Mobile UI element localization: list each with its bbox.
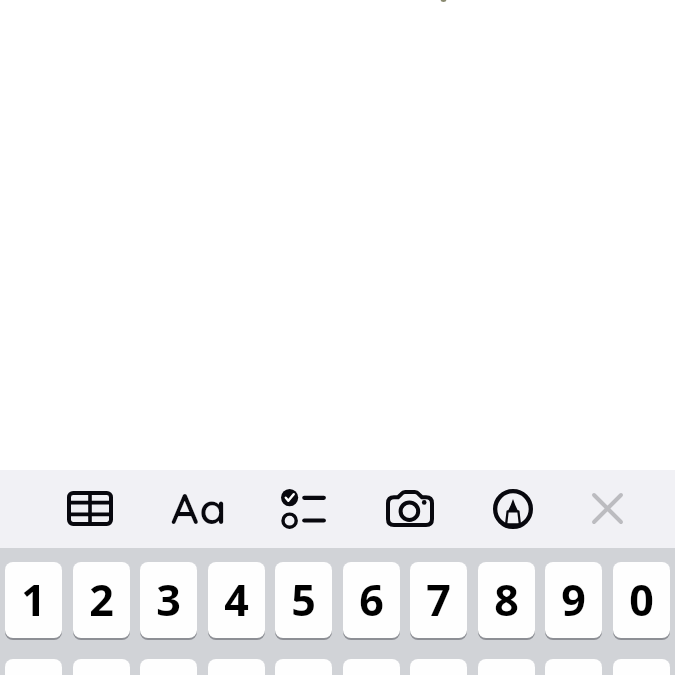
button[interactable] <box>478 659 535 675</box>
button[interactable] <box>275 659 332 675</box>
staticText: 9 <box>561 570 586 629</box>
staticText: Aa <box>171 481 227 535</box>
button[interactable] <box>613 659 670 675</box>
staticText: 1 <box>21 570 46 629</box>
staticText: 4 <box>224 570 249 629</box>
button[interactable]: 0 <box>613 562 670 638</box>
staticText: 6 <box>359 570 384 629</box>
button[interactable] <box>140 659 197 675</box>
button[interactable] <box>208 659 265 675</box>
button[interactable]: Aa <box>166 475 231 541</box>
button[interactable]: 1 <box>5 562 62 638</box>
staticText: 5 <box>291 570 316 629</box>
staticText: 8 <box>494 570 519 629</box>
staticText: 7 <box>426 570 451 629</box>
button[interactable]: 8 <box>478 562 535 638</box>
button[interactable]: 4 <box>208 562 265 638</box>
button[interactable]: Insert table <box>58 475 122 541</box>
staticText: 0 <box>629 570 654 629</box>
button[interactable]: 9 <box>545 562 602 638</box>
button[interactable] <box>5 659 62 675</box>
staticText: 3 <box>156 570 181 629</box>
button[interactable]: 2 <box>73 562 130 638</box>
button[interactable]: 5 <box>275 562 332 638</box>
button[interactable] <box>343 659 400 675</box>
button[interactable]: Camera <box>378 475 442 541</box>
button[interactable]: Checklist <box>271 476 335 542</box>
button[interactable] <box>410 659 467 675</box>
button[interactable] <box>73 659 130 675</box>
button[interactable]: 3 <box>140 562 197 638</box>
button[interactable]: Markup <box>481 476 545 542</box>
staticText: 2 <box>89 570 114 629</box>
button[interactable]: 7 <box>410 562 467 638</box>
button[interactable]: 6 <box>343 562 400 638</box>
button[interactable]: Close keyboard <box>575 475 639 541</box>
button[interactable] <box>545 659 602 675</box>
